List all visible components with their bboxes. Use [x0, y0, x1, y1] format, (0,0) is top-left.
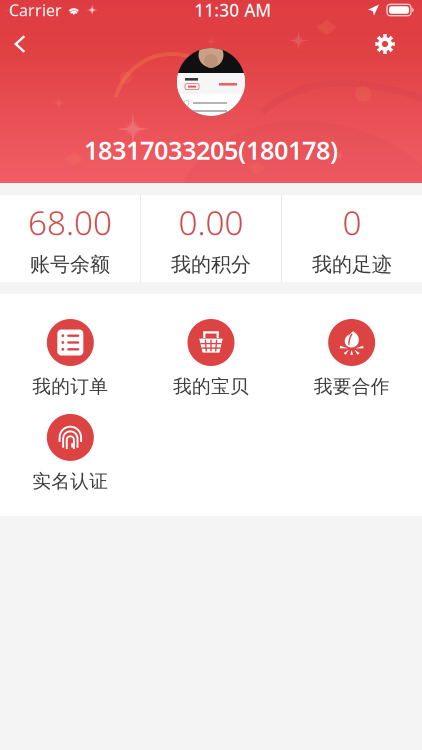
staticText: 我的足迹	[312, 252, 392, 277]
staticText: 0	[342, 200, 361, 244]
staticText: 68.00	[28, 200, 112, 244]
button[interactable]: 实名认证	[0, 406, 141, 501]
button[interactable]: 我的订单	[0, 311, 141, 406]
button[interactable]: Back	[5, 22, 35, 66]
staticText: 账号余额	[30, 252, 110, 277]
staticText: 我的积分	[171, 252, 251, 277]
staticText: 我要合作	[314, 375, 390, 398]
button[interactable]: 我要合作	[281, 311, 422, 406]
button[interactable]: Settings	[370, 22, 400, 66]
button[interactable]: 68.00	[0, 195, 140, 282]
button[interactable]: 我的宝贝	[141, 311, 281, 406]
button[interactable]: 0.00	[141, 195, 281, 282]
button[interactable]: 0	[282, 195, 422, 282]
staticText: 11:30 AM	[194, 0, 271, 21]
staticText: 我的宝贝	[173, 375, 249, 398]
staticText: 实名认证	[32, 470, 108, 493]
staticText: 0.00	[178, 200, 243, 244]
staticText: Carrier	[9, 0, 62, 21]
staticText: 我的订单	[32, 375, 108, 398]
staticText: 18317033205(180178)	[84, 133, 338, 167]
